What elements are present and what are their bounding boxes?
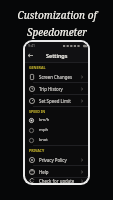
staticText: Trip History — [39, 86, 63, 92]
staticText: GENERAL — [29, 65, 46, 70]
button[interactable]: Check for update — [25, 178, 88, 183]
button[interactable]: knot — [25, 135, 88, 145]
staticText: Set Speed Limit — [39, 98, 71, 104]
staticText: Customization of — [17, 8, 97, 22]
button[interactable]: Screen Changes — [25, 71, 88, 82]
staticText: PRIVACY — [29, 148, 45, 153]
button[interactable]: Back — [25, 50, 36, 61]
staticText: 9:41 — [28, 43, 35, 48]
button[interactable]: Privacy Policy — [25, 154, 88, 165]
staticText: Privacy Policy — [39, 157, 67, 163]
staticText: Help — [39, 169, 49, 175]
staticText: Settings — [46, 52, 68, 59]
staticText: km/h — [39, 117, 50, 123]
staticText: Speedometer — [27, 25, 87, 39]
staticText: knot — [39, 137, 48, 143]
staticText: Check for update — [39, 178, 75, 183]
button[interactable]: Trip History — [25, 83, 88, 94]
button[interactable]: mph — [25, 125, 88, 135]
staticText: Screen Changes — [39, 74, 72, 80]
button[interactable]: Help — [25, 166, 88, 177]
button[interactable]: Set Speed Limit — [25, 95, 88, 106]
staticText: SPEED IN — [29, 109, 46, 114]
staticText: mph — [39, 127, 49, 133]
button[interactable]: km/h — [25, 115, 88, 125]
